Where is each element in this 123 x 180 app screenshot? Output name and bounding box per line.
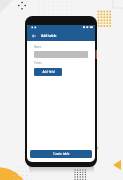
staticText: Points	[34, 61, 42, 65]
staticText: Add field	[42, 70, 55, 74]
staticText: Create table	[53, 152, 70, 156]
staticText: Add table	[41, 33, 57, 38]
staticText: Name	[34, 45, 42, 49]
button[interactable]: Add field	[34, 68, 62, 76]
button[interactable]: Create table	[30, 150, 92, 158]
button[interactable]: Back	[27, 30, 41, 41]
